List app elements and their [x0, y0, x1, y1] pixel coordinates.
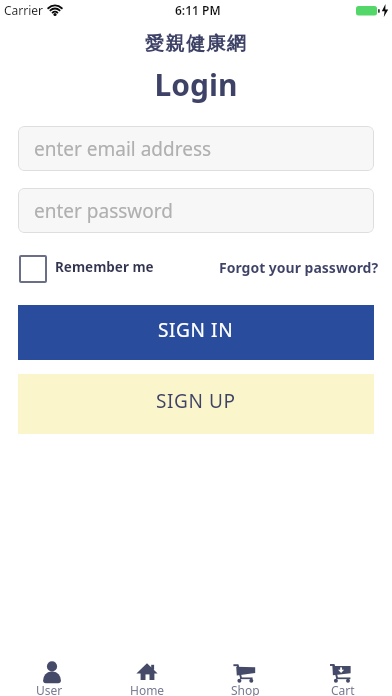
- staticText: 6:11 PM: [175, 2, 221, 18]
- staticText: enter password: [34, 198, 173, 224]
- staticText: 愛親健康網: [0, 32, 392, 56]
- staticText: User: [36, 682, 63, 696]
- button[interactable]: Cart: [294, 647, 392, 696]
- staticText: SIGN UP: [156, 388, 236, 414]
- staticText: Shop: [231, 682, 260, 696]
- staticText: Carrier: [4, 2, 44, 18]
- staticText: SIGN IN: [158, 317, 234, 343]
- button[interactable]: Shop: [196, 647, 294, 696]
- button[interactable]: SIGN IN: [18, 305, 374, 360]
- staticText: enter email address: [34, 136, 212, 162]
- staticText: Home: [130, 682, 165, 696]
- button[interactable]: Home: [98, 647, 196, 696]
- staticText: Login: [0, 64, 392, 105]
- button[interactable]: [19, 255, 47, 283]
- button[interactable]: User: [0, 647, 98, 696]
- button[interactable]: Forgot your password?: [219, 258, 379, 277]
- button[interactable]: enter password: [18, 188, 374, 233]
- staticText: Remember me: [55, 258, 154, 276]
- button[interactable]: SIGN UP: [18, 374, 374, 434]
- button[interactable]: enter email address: [18, 126, 374, 171]
- staticText: Cart: [331, 682, 355, 696]
